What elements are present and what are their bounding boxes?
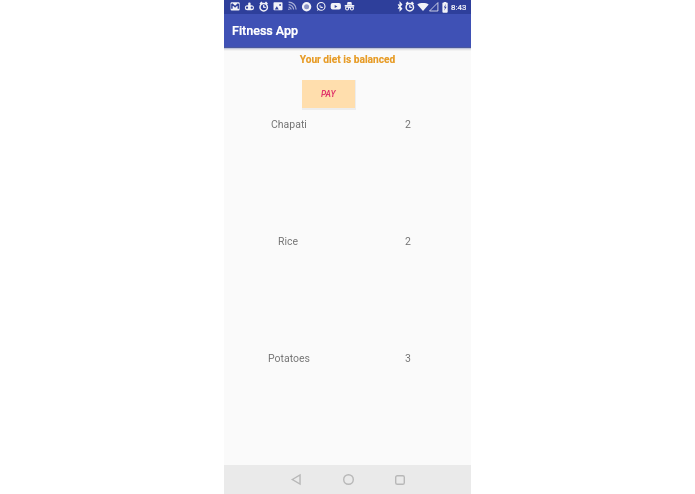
- button[interactable]: Home: [333, 465, 363, 494]
- staticText: 8:43: [451, 3, 467, 12]
- button[interactable]: Back: [281, 465, 311, 494]
- staticText: Chapati: [271, 118, 307, 130]
- staticText: Rice: [278, 235, 299, 247]
- button[interactable]: Chapati: [224, 116, 471, 132]
- staticText: 3: [405, 352, 411, 364]
- staticText: 2: [405, 118, 411, 130]
- staticText: 2: [405, 235, 411, 247]
- staticText: Fitness App: [232, 23, 299, 38]
- staticText: PAY: [321, 89, 336, 99]
- button[interactable]: Potatoes: [224, 350, 471, 366]
- button[interactable]: PAY: [302, 80, 355, 108]
- staticText: Potatoes: [268, 352, 310, 364]
- staticText: Your diet is balanced: [224, 54, 471, 66]
- button[interactable]: Rice: [224, 233, 471, 249]
- button[interactable]: Recent apps: [385, 465, 415, 494]
